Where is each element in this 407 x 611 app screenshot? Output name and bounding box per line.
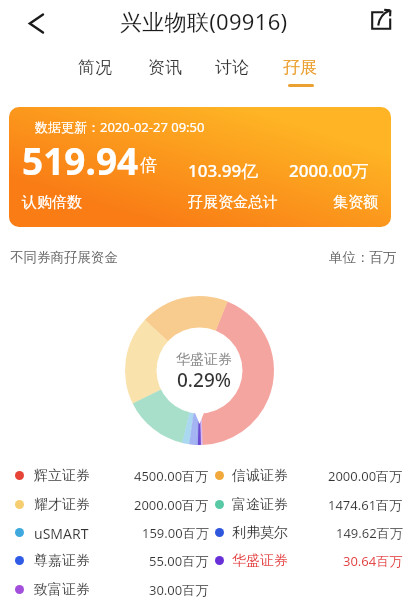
- button[interactable]: 数据更新：2020-02-27 09:50: [9, 107, 391, 227]
- staticText: 信诚证券: [232, 467, 288, 485]
- staticText: 0.29%: [177, 367, 231, 393]
- staticText: 孖展资金总计: [188, 193, 278, 212]
- staticText: 30.00百万: [149, 581, 209, 599]
- staticText: 简况: [78, 57, 112, 78]
- staticText: 孖展: [283, 57, 317, 78]
- button[interactable]: 利弗莫尔: [207, 519, 403, 547]
- staticText: 耀才证券: [34, 496, 90, 514]
- staticText: 55.00百万: [149, 552, 209, 570]
- staticText: 华盛证券: [232, 552, 288, 570]
- staticText: 单位：百万: [329, 249, 397, 266]
- staticText: 2000.00万: [289, 159, 369, 182]
- button[interactable]: 简况: [61, 50, 129, 84]
- staticText: 讨论: [215, 57, 249, 78]
- staticText: 1474.61百万: [328, 496, 403, 514]
- staticText: 富途证券: [232, 496, 288, 514]
- staticText: 不同券商孖展资金: [10, 249, 118, 266]
- staticText: 2000.00百万: [134, 496, 209, 514]
- staticText: 认购倍数: [22, 193, 82, 212]
- staticText: 149.62百万: [336, 524, 403, 542]
- staticText: uSMART: [34, 524, 89, 543]
- staticText: 利弗莫尔: [232, 524, 288, 542]
- button[interactable]: [364, 2, 398, 36]
- staticText: 数据更新：2020-02-27 09:50: [35, 118, 205, 136]
- button[interactable]: 资讯: [131, 50, 199, 84]
- button[interactable]: 讨论: [198, 50, 266, 84]
- staticText: 159.00百万: [142, 524, 209, 542]
- button[interactable]: uSMART: [8, 519, 208, 547]
- staticText: 致富证券: [34, 581, 90, 599]
- button[interactable]: 孖展: [266, 50, 334, 84]
- staticText: 倍: [140, 155, 157, 176]
- button[interactable]: 信诚证券: [207, 462, 403, 490]
- button[interactable]: 尊嘉证券: [8, 547, 208, 575]
- staticText: 辉立证券: [34, 467, 90, 485]
- staticText: 兴业物联(09916): [120, 6, 288, 36]
- staticText: 尊嘉证券: [34, 552, 90, 570]
- button[interactable]: 耀才证券: [8, 491, 208, 519]
- staticText: 103.99亿: [188, 159, 259, 182]
- staticText: 2000.00百万: [328, 467, 403, 485]
- staticText: 华盛证券: [176, 351, 232, 369]
- staticText: 4500.00百万: [134, 467, 209, 485]
- button[interactable]: [18, 6, 54, 40]
- button[interactable]: 辉立证券: [8, 462, 208, 490]
- staticText: 集资额: [333, 193, 378, 212]
- button[interactable]: 富途证券: [207, 491, 403, 519]
- button[interactable]: 致富证券: [8, 576, 208, 604]
- staticText: 519.94: [22, 135, 139, 185]
- button[interactable]: 华盛证券: [207, 547, 403, 575]
- staticText: 30.64百万: [343, 552, 403, 570]
- staticText: 资讯: [148, 57, 182, 78]
